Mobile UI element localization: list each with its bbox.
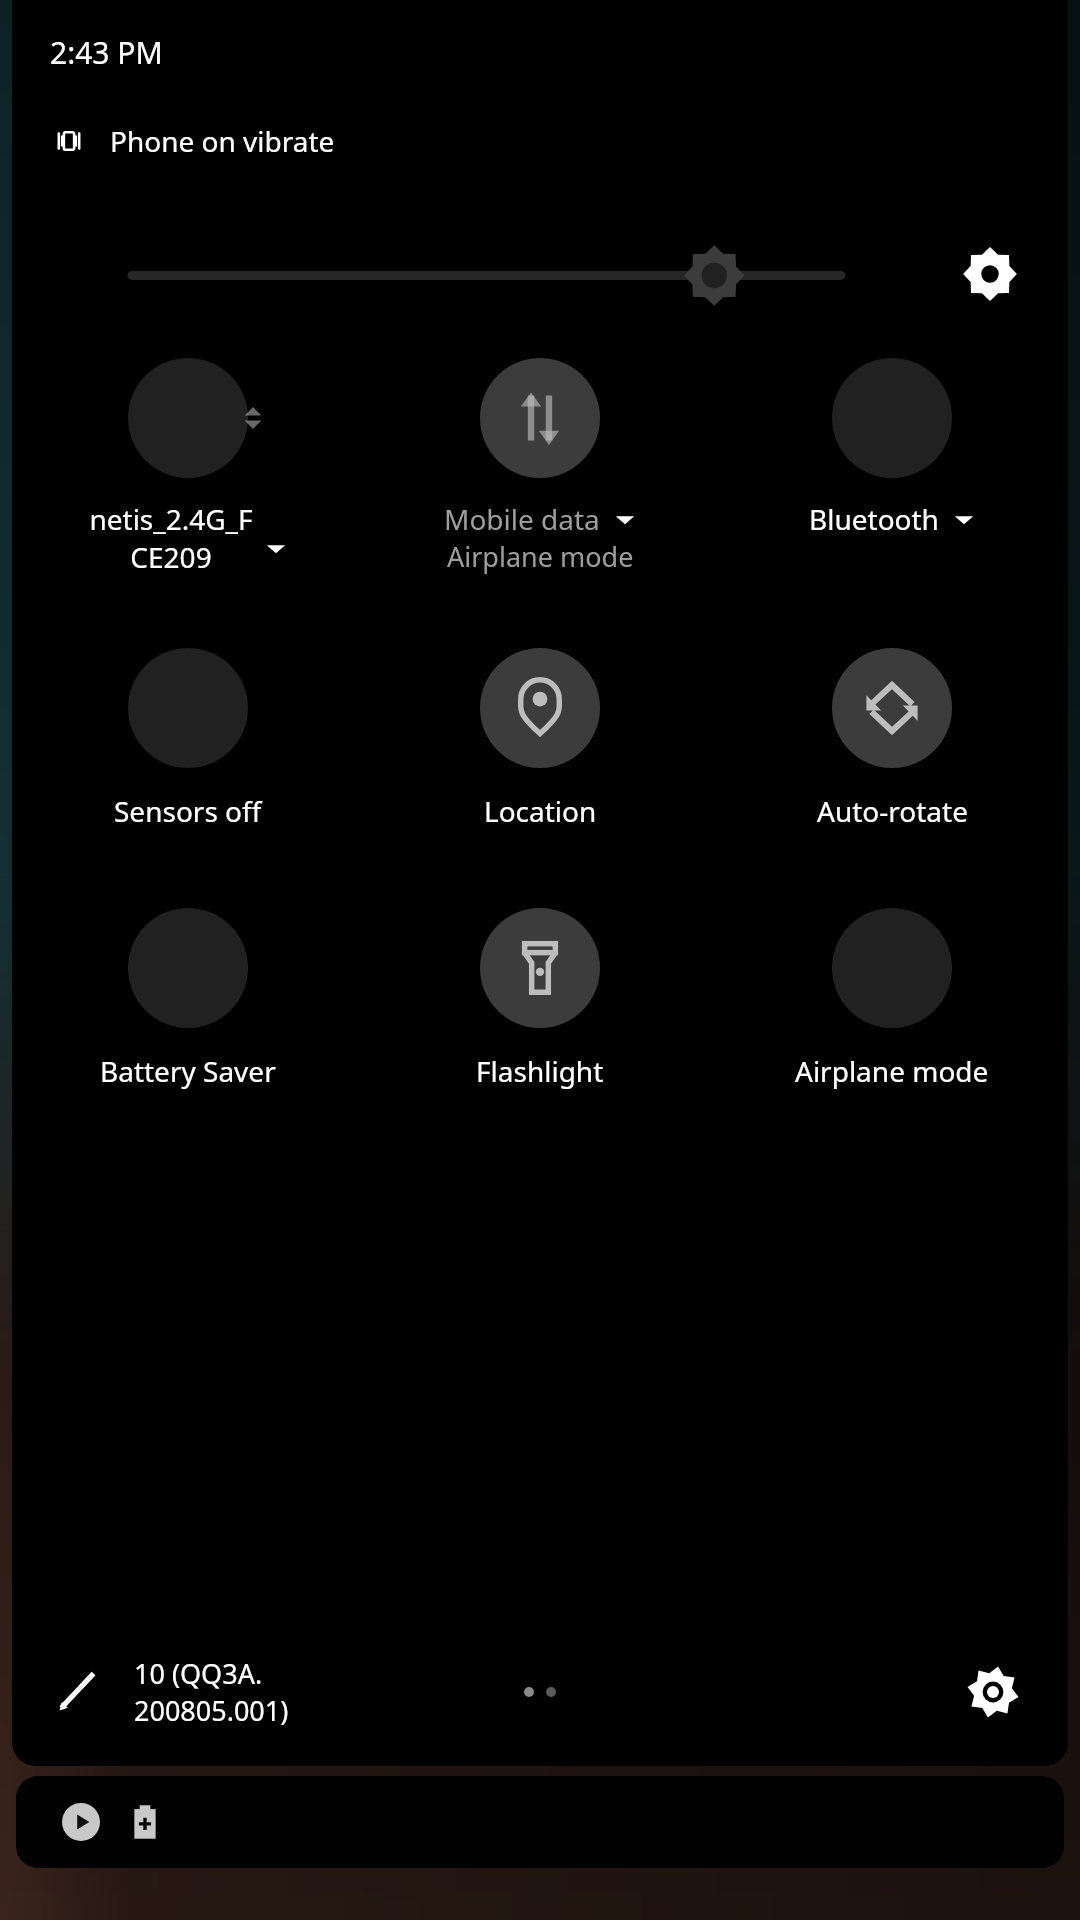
button[interactable]: Airplane mode xyxy=(716,908,1068,1090)
button[interactable]: Settings xyxy=(956,1655,1030,1729)
staticText: Location xyxy=(484,792,597,830)
button[interactable]: netis_2.4G_F xyxy=(12,358,364,576)
staticText: Bluetooth xyxy=(809,500,939,538)
staticText: 2:43 PM xyxy=(50,32,163,73)
button[interactable] xyxy=(16,1776,1064,1868)
staticText: 200805.001) xyxy=(134,1692,289,1729)
staticText: Airplane mode xyxy=(447,538,634,575)
button[interactable]: Sensors off xyxy=(12,648,364,830)
staticText: Phone on vibrate xyxy=(110,122,335,160)
other: Edit xyxy=(42,1657,112,1727)
staticText: Auto-rotate xyxy=(817,792,968,830)
staticText: Sensors off xyxy=(114,792,262,830)
staticText: Battery Saver xyxy=(100,1052,276,1090)
button[interactable]: Location xyxy=(364,648,716,830)
staticText: 10 (QQ3A. xyxy=(134,1655,263,1692)
button[interactable]: Mobile data xyxy=(364,358,716,575)
button[interactable]: Bluetooth xyxy=(716,358,1068,538)
button[interactable]: Flashlight xyxy=(364,908,716,1090)
staticText: netis_2.4G_F xyxy=(89,500,253,538)
staticText: CE209 xyxy=(130,538,212,576)
button[interactable]: Auto brightness xyxy=(960,244,1020,304)
button[interactable]: Battery Saver xyxy=(12,908,364,1090)
staticText: Flashlight xyxy=(476,1052,604,1090)
button[interactable]: Edit xyxy=(42,1655,289,1729)
staticText: Mobile data xyxy=(444,500,600,538)
button[interactable]: Auto-rotate xyxy=(716,648,1068,830)
staticText: Airplane mode xyxy=(795,1052,989,1090)
